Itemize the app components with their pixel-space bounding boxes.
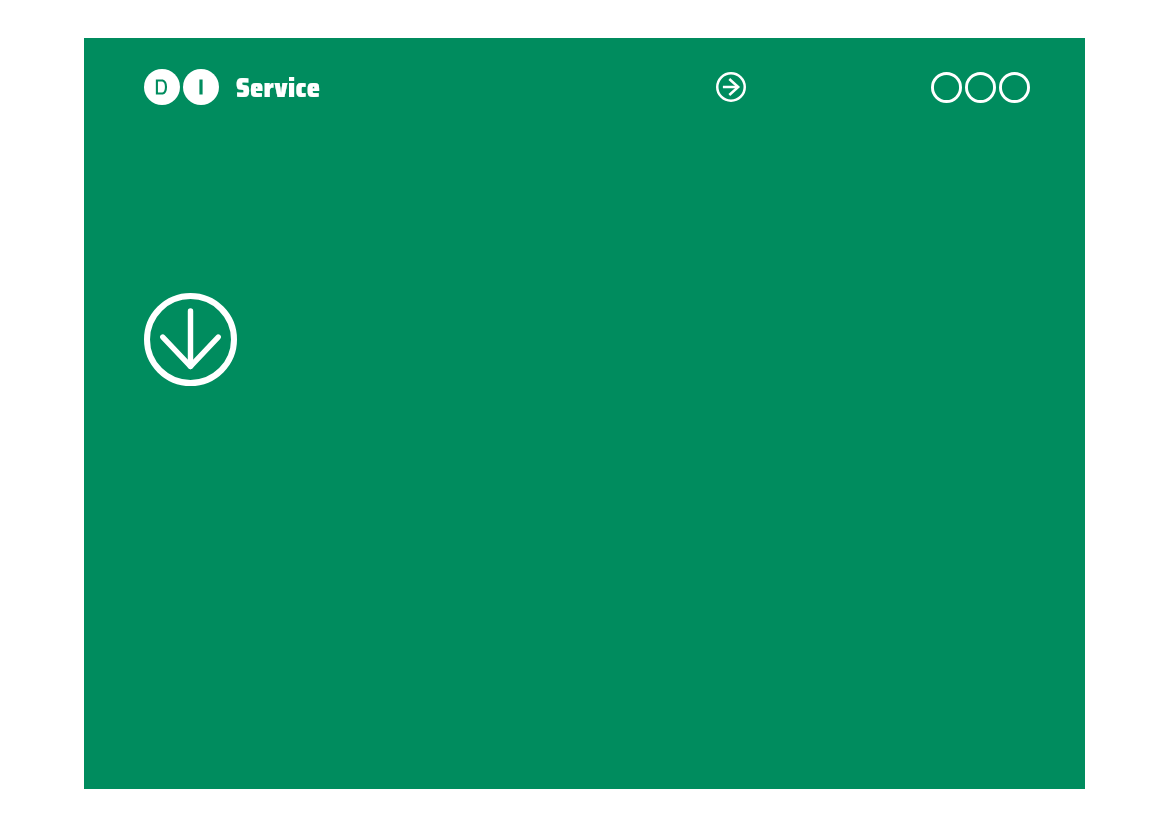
button[interactable]: Continue [716, 72, 746, 102]
staticText: Service [236, 67, 321, 103]
button[interactable]: More options [931, 72, 1030, 103]
button[interactable]: Download [144, 293, 237, 386]
button[interactable]: DI Service home [144, 69, 321, 105]
